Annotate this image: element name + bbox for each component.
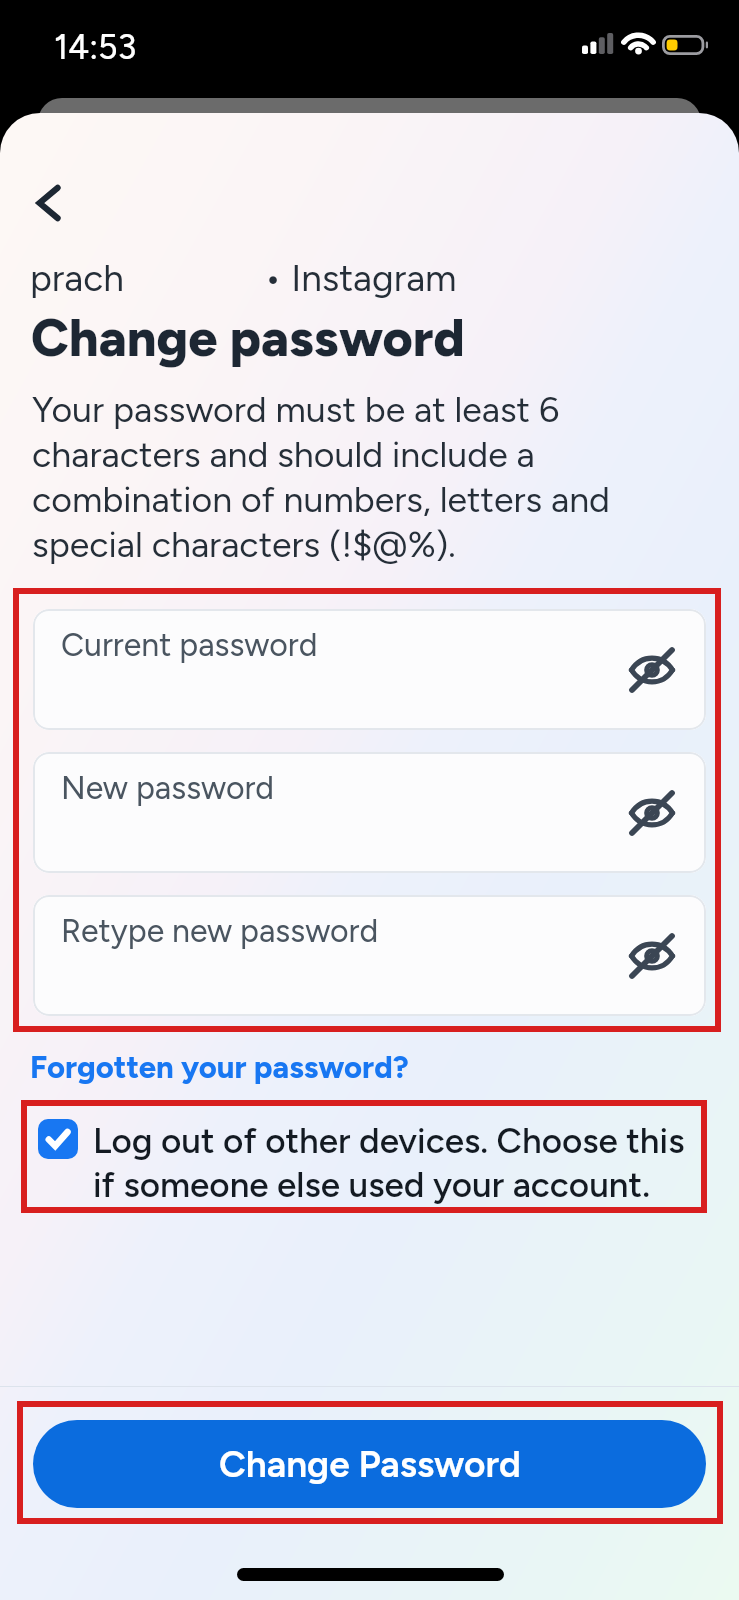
button[interactable]: Change Password bbox=[33, 1420, 706, 1508]
button[interactable]: New password bbox=[33, 752, 706, 873]
button[interactable]: Show password bbox=[627, 645, 677, 695]
button[interactable]: Forgotten your password? bbox=[30, 1049, 409, 1086]
staticText: Change Password bbox=[219, 1442, 521, 1486]
staticText: Current password bbox=[61, 626, 318, 664]
button[interactable]: Current password bbox=[33, 609, 706, 730]
button[interactable]: Show password bbox=[627, 788, 677, 838]
staticText: Retype new password bbox=[61, 912, 379, 950]
staticText: Log out of other devices. Choose this if… bbox=[93, 1120, 701, 1206]
button[interactable]: Retype new password bbox=[33, 895, 706, 1016]
staticText: prach bbox=[30, 256, 124, 300]
staticText: • Instagram bbox=[264, 256, 457, 300]
staticText: Your password must be at least 6 charact… bbox=[32, 388, 632, 566]
staticText: Change password bbox=[31, 307, 465, 369]
button[interactable]: Show password bbox=[627, 931, 677, 981]
staticText: 14:53 bbox=[54, 27, 137, 68]
button[interactable]: Back bbox=[20, 175, 76, 231]
staticText: New password bbox=[61, 769, 275, 807]
button[interactable]: Log out of other devices. Choose this if… bbox=[38, 1120, 701, 1206]
